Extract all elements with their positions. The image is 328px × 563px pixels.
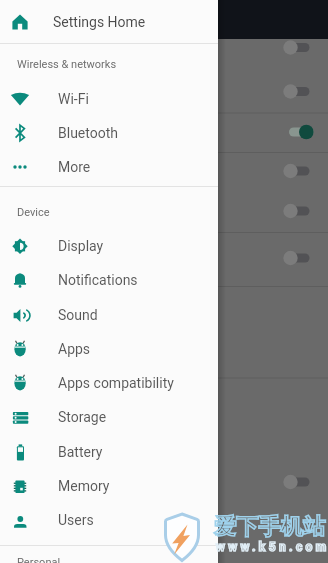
button[interactable]: Users	[0, 503, 218, 537]
staticText: Storage	[58, 409, 107, 425]
button[interactable]: Memory	[0, 469, 218, 503]
button[interactable]: Apps compatibility	[0, 366, 218, 400]
staticText: Display	[58, 238, 104, 254]
staticText: Apps	[58, 341, 91, 357]
button[interactable]: Apps	[0, 332, 218, 366]
staticText: Notifications	[58, 272, 138, 288]
button[interactable]: Bluetooth	[0, 116, 218, 150]
staticText: Bluetooth	[58, 125, 118, 141]
button[interactable]: Storage	[0, 400, 218, 434]
staticText: Battery	[58, 444, 103, 460]
staticText: Wi-Fi	[58, 91, 89, 107]
button[interactable]: Settings Home	[0, 0, 218, 43]
button[interactable]: Sound	[0, 298, 218, 332]
staticText: 爱下手机站	[214, 513, 325, 541]
staticText: Sound	[58, 307, 98, 323]
button[interactable]: More	[0, 150, 218, 184]
button[interactable]: Wi-Fi	[0, 82, 218, 116]
staticText: www.k5n.com	[216, 540, 328, 554]
staticText: More	[58, 159, 91, 175]
staticText: Wireless & networks	[17, 58, 117, 71]
staticText: Settings Home	[53, 14, 146, 30]
button[interactable]: Battery	[0, 435, 218, 469]
staticText: Personal	[17, 556, 61, 563]
staticText: Memory	[58, 478, 110, 494]
button[interactable]: Notifications	[0, 263, 218, 297]
staticText: Users	[58, 512, 94, 528]
staticText: Apps compatibility	[58, 375, 174, 391]
staticText: Device	[17, 206, 50, 219]
button[interactable]: Display	[0, 229, 218, 263]
